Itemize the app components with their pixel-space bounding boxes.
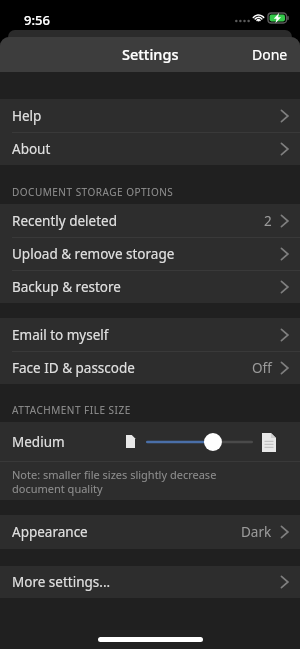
- button[interactable]: Appearance: [0, 515, 300, 549]
- staticText: Settings: [122, 44, 179, 64]
- staticText: Medium: [12, 433, 65, 451]
- staticText: Done: [252, 45, 288, 62]
- staticText: Face ID & passcode: [12, 359, 135, 377]
- button[interactable]: Help: [0, 99, 300, 132]
- staticText: Off: [252, 359, 272, 377]
- staticText: More settings...: [12, 573, 111, 591]
- staticText: Note: smaller file sizes slightly decrea…: [12, 467, 236, 496]
- staticText: Appearance: [12, 523, 88, 541]
- button[interactable]: Face ID & passcode: [0, 352, 300, 384]
- staticText: 9:56: [24, 11, 50, 29]
- staticText: Dark: [241, 523, 272, 541]
- staticText: ATTACHMENT FILE SIZE: [12, 403, 131, 417]
- staticText: About: [12, 140, 51, 158]
- button[interactable]: Done: [240, 37, 300, 72]
- staticText: Recently deleted: [12, 212, 118, 230]
- button[interactable]: Backup & restore: [0, 271, 300, 303]
- staticText: Upload & remove storage: [12, 245, 175, 263]
- button[interactable]: About: [0, 133, 300, 165]
- button[interactable]: Email to myself: [0, 318, 300, 351]
- staticText: Email to myself: [12, 326, 109, 344]
- button[interactable]: Recently deleted: [0, 204, 300, 237]
- staticText: DOCUMENT STORAGE OPTIONS: [12, 185, 174, 199]
- staticText: Help: [12, 107, 42, 125]
- staticText: Backup & restore: [12, 278, 121, 296]
- button[interactable]: Upload & remove storage: [0, 238, 300, 270]
- staticText: 2: [264, 212, 272, 230]
- button[interactable]: More settings...: [0, 566, 300, 598]
